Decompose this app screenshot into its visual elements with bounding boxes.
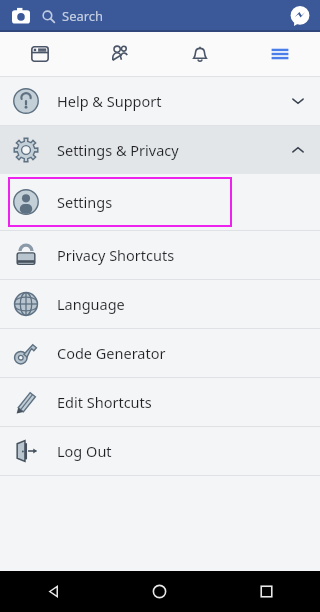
button[interactable]: Settings & Privacy [0, 126, 320, 174]
staticText: Edit Shortcuts [57, 392, 152, 412]
button[interactable]: Settings [8, 177, 232, 227]
button[interactable]: Back [0, 571, 106, 612]
button[interactable]: Log Out [0, 427, 320, 475]
button[interactable]: Menu [240, 32, 320, 76]
button[interactable]: News Feed [0, 32, 80, 76]
staticText: Help & Support [57, 91, 162, 111]
staticText: Log Out [57, 441, 112, 461]
button[interactable]: Search [42, 7, 272, 25]
button[interactable]: Recents [213, 571, 320, 612]
staticText: Search [62, 7, 104, 25]
staticText: Code Generator [57, 343, 166, 363]
button[interactable]: Notifications [160, 32, 240, 76]
button[interactable]: Friends [80, 32, 160, 76]
staticText: Privacy Shortcuts [57, 245, 175, 265]
button[interactable]: Help & Support [0, 77, 320, 125]
button[interactable]: Edit Shortcuts [0, 378, 320, 426]
button[interactable]: Code Generator [0, 329, 320, 377]
button[interactable]: Camera [8, 3, 34, 29]
staticText: Settings [57, 192, 113, 212]
staticText: Settings & Privacy [57, 140, 179, 160]
button[interactable]: Home [106, 571, 213, 612]
button[interactable]: Language [0, 280, 320, 328]
button[interactable]: Messenger [287, 3, 313, 29]
button[interactable]: Privacy Shortcuts [0, 231, 320, 279]
staticText: Language [57, 294, 125, 314]
